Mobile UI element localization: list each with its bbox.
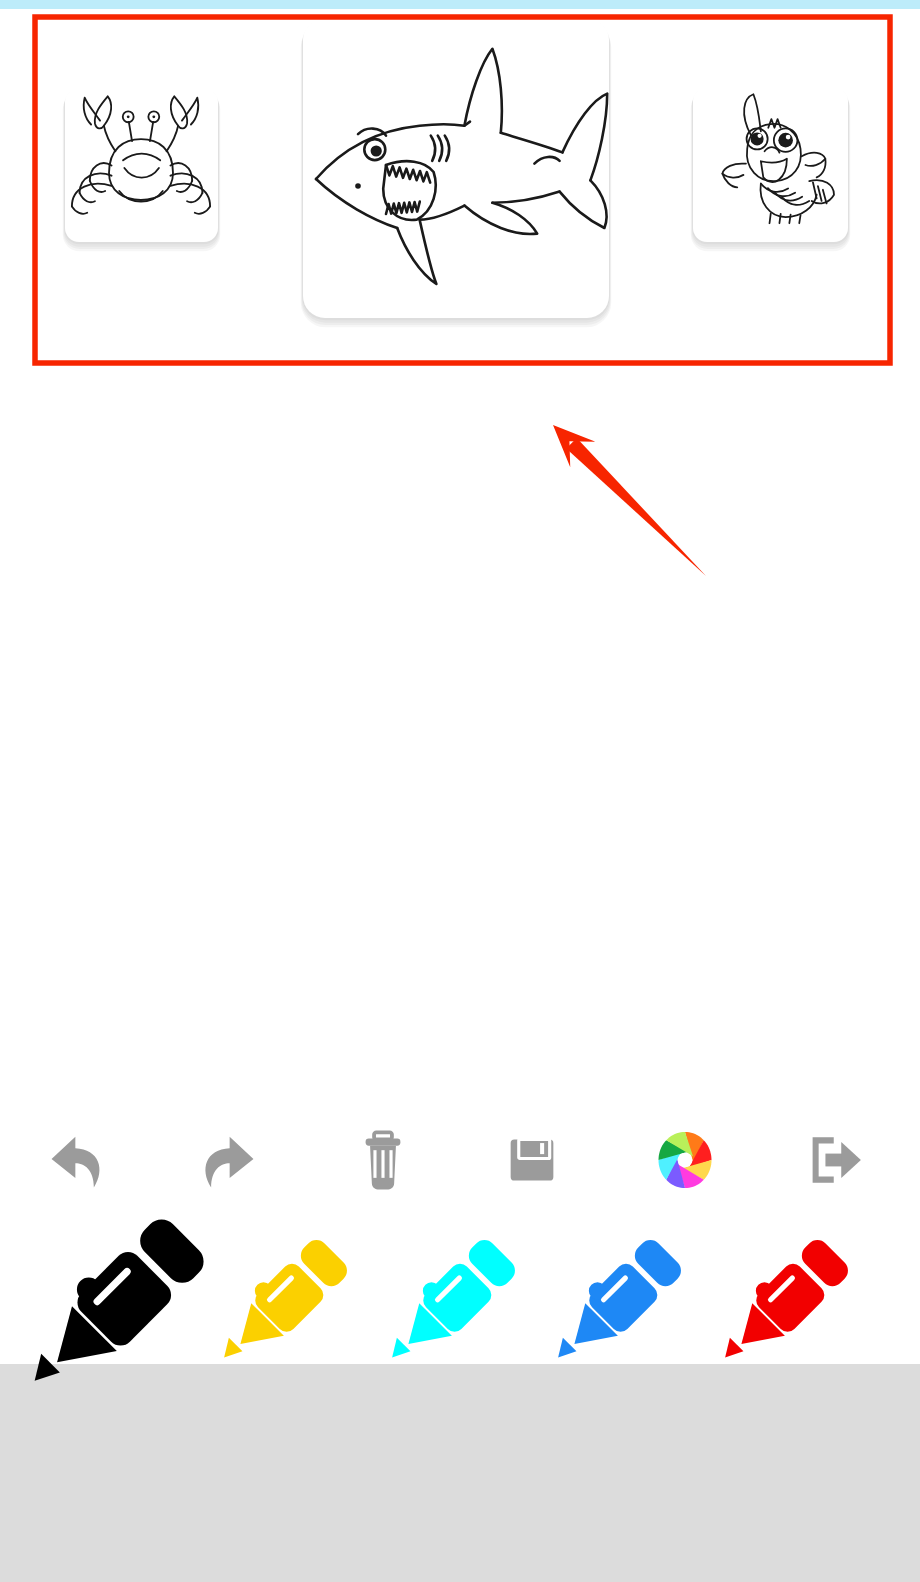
button[interactable]: Clear all [328, 1105, 438, 1215]
button[interactable]: Pen color 1 [48, 1215, 208, 1375]
button[interactable]: Colors [630, 1105, 740, 1215]
button[interactable]: Pen color 3 [380, 1215, 540, 1375]
button[interactable]: Undo [23, 1105, 133, 1215]
button[interactable]: Pen color 2 [212, 1215, 372, 1375]
button[interactable]: Redo [172, 1105, 282, 1215]
button[interactable]: Save [477, 1105, 587, 1215]
button[interactable]: Pen color 4 [546, 1215, 706, 1375]
button[interactable]: Pen color 5 [713, 1215, 873, 1375]
button[interactable]: Exit [781, 1105, 891, 1215]
